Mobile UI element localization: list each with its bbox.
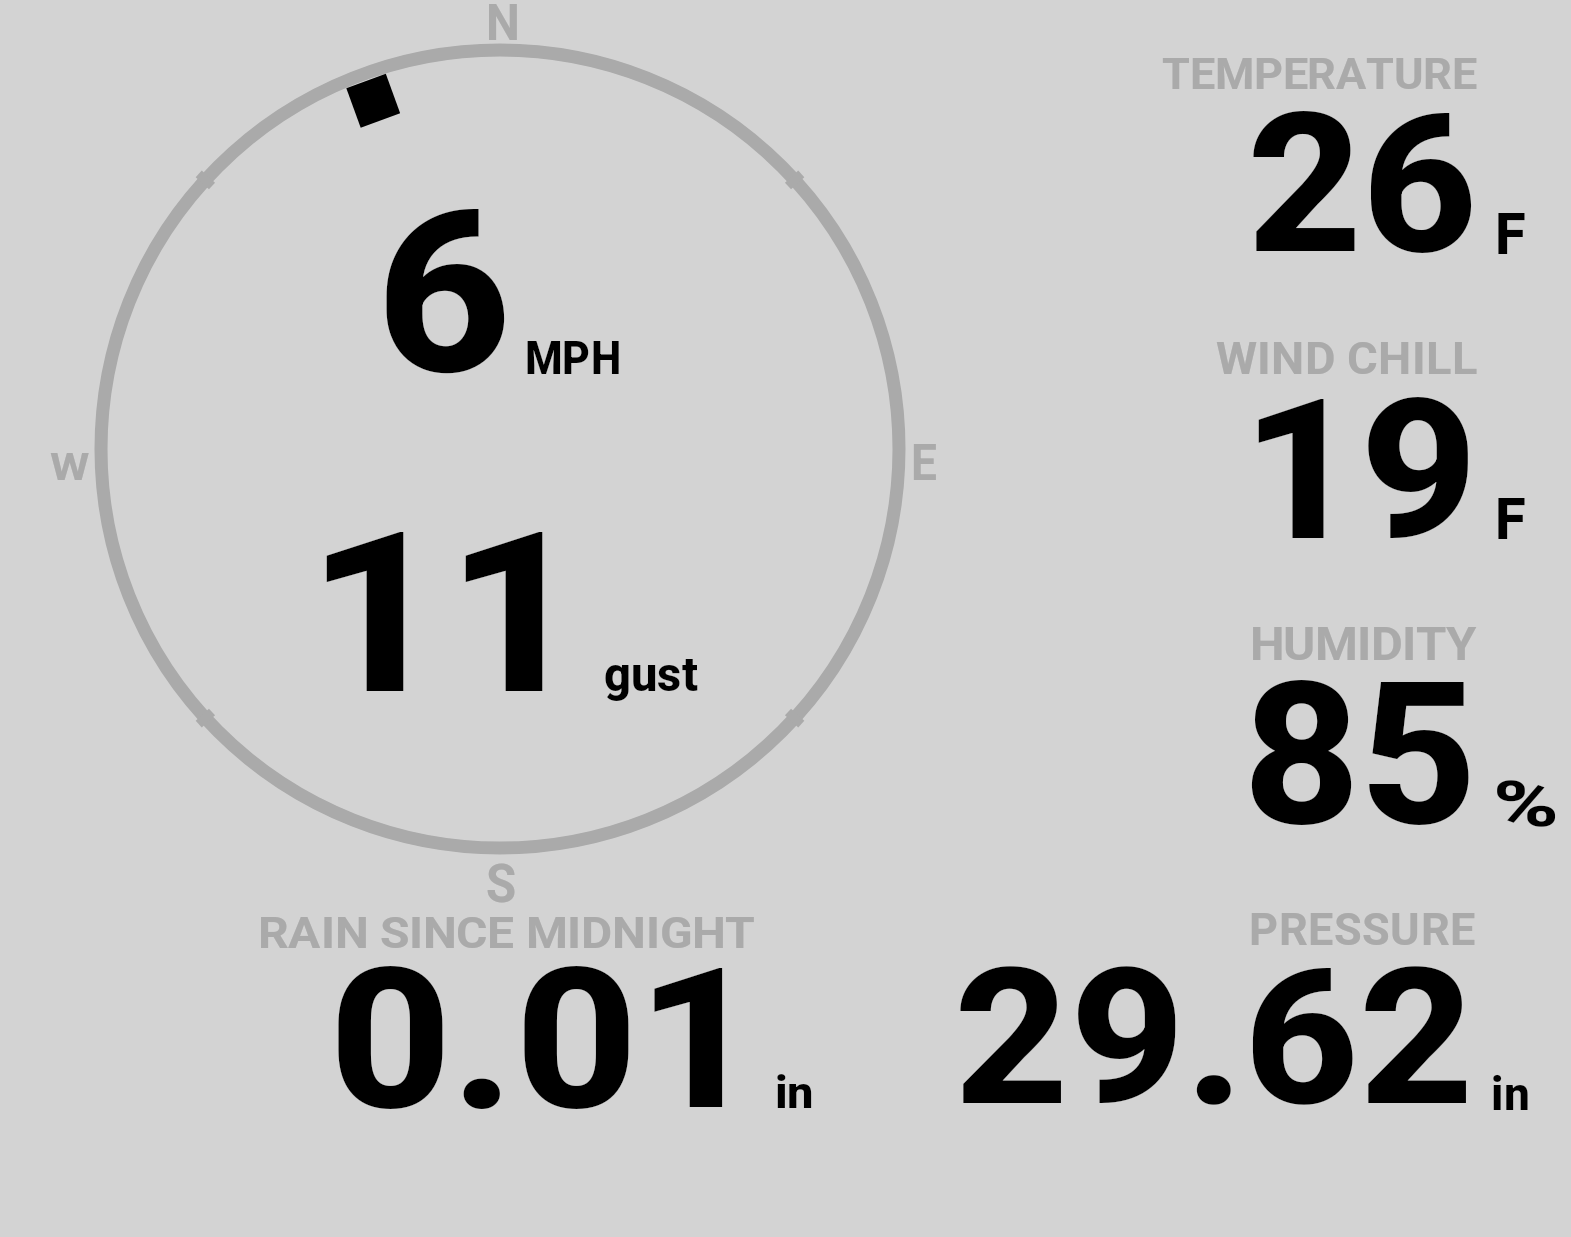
button[interactable]: Wind chill 19 F [1140, 325, 1570, 555]
button[interactable]: Temperature 26 F [1140, 40, 1570, 270]
button[interactable]: Rain since midnight 0.01 in [250, 900, 830, 1125]
button[interactable]: Pressure 29.62 in [945, 900, 1545, 1125]
button[interactable]: Wind 6 MPH, gusting 11, direction north … [95, 0, 945, 910]
button[interactable]: Humidity 85 percent [1140, 610, 1570, 840]
